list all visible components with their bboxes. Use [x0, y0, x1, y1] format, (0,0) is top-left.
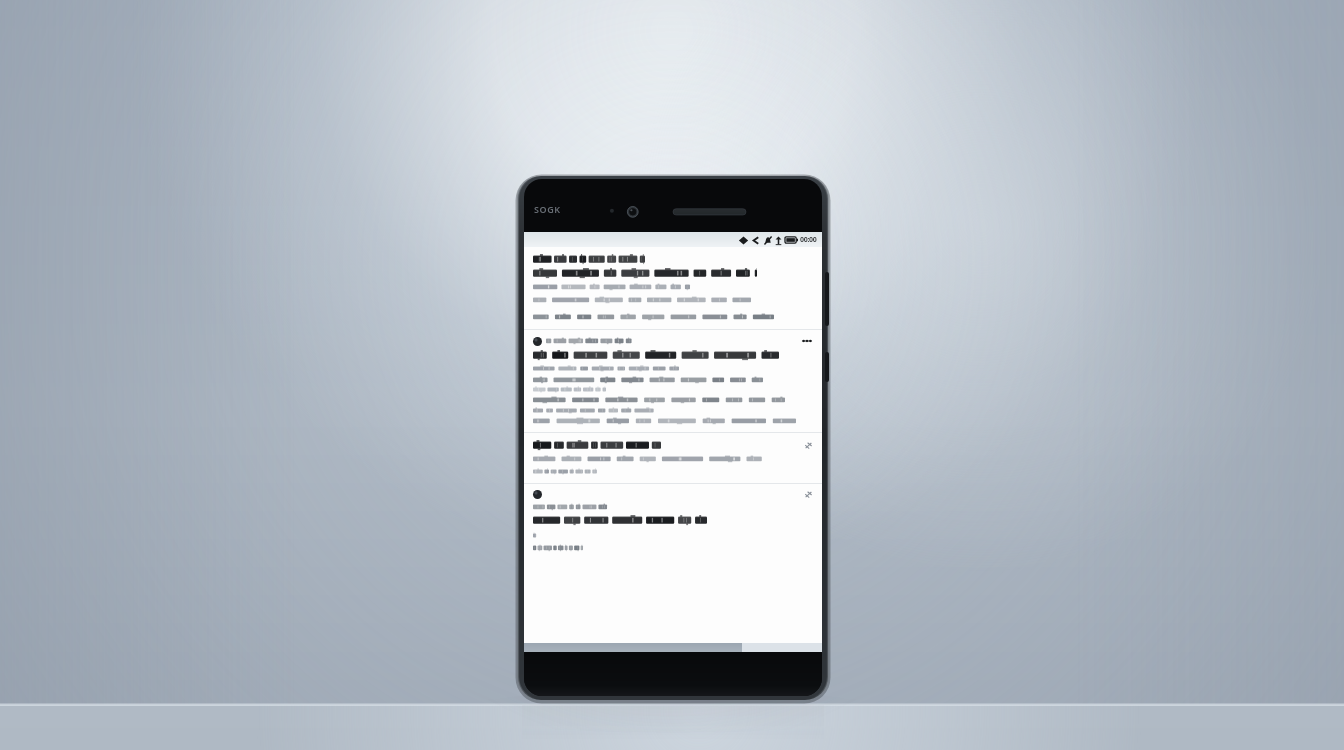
button[interactable]: More options: [801, 336, 813, 346]
button[interactable]: Volume: [825, 272, 829, 326]
button[interactable]: Action: [524, 484, 822, 558]
button[interactable]: Action: [804, 441, 813, 450]
button[interactable]: More options: [524, 330, 822, 432]
button[interactable]: Progress: [524, 643, 822, 652]
button[interactable]: Power: [825, 352, 829, 382]
button[interactable]: Action: [804, 490, 813, 499]
button[interactable]: [524, 247, 822, 329]
staticText: 00:00: [800, 235, 817, 245]
staticText: SOGK: [534, 203, 561, 215]
button[interactable]: Action: [524, 433, 822, 483]
